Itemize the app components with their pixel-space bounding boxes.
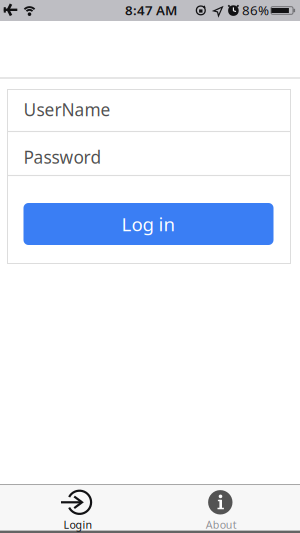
- staticText: Password: [23, 145, 101, 168]
- button[interactable]: UserName: [7, 89, 290, 130]
- staticText: UserName: [23, 98, 110, 121]
- staticText: About: [206, 517, 237, 532]
- staticText: 86%: [242, 1, 269, 19]
- button[interactable]: Login: [0, 485, 150, 531]
- staticText: Log in: [121, 212, 175, 236]
- staticText: 8:47 AM: [125, 1, 177, 19]
- button[interactable]: Password: [7, 135, 290, 178]
- button[interactable]: Log in: [23, 203, 273, 245]
- button[interactable]: About: [150, 485, 300, 531]
- staticText: Login: [63, 517, 92, 532]
